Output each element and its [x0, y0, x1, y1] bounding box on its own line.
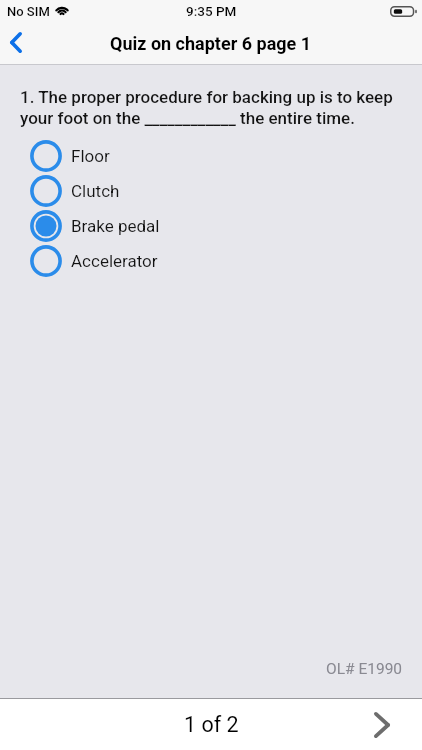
staticText: Quiz on chapter 6 page 1: [110, 33, 312, 54]
staticText: 9:35 PM: [186, 3, 237, 19]
staticText: OL# E1990: [326, 660, 403, 678]
button[interactable]: Brake pedal: [0, 208, 422, 243]
staticText: Brake pedal: [71, 216, 160, 236]
staticText: No SIM: [7, 4, 50, 19]
staticText: Floor: [71, 146, 110, 166]
button[interactable]: Back: [0, 22, 44, 65]
staticText: Accelerator: [71, 251, 158, 271]
staticText: 1. The proper procedure for backing up i…: [20, 87, 400, 129]
button[interactable]: Clutch: [0, 173, 422, 208]
button[interactable]: Floor: [0, 138, 422, 173]
button[interactable]: Accelerator: [0, 243, 422, 278]
staticText: Clutch: [71, 181, 120, 201]
staticText: 1 of 2: [184, 712, 239, 737]
button[interactable]: Next page: [362, 705, 402, 745]
